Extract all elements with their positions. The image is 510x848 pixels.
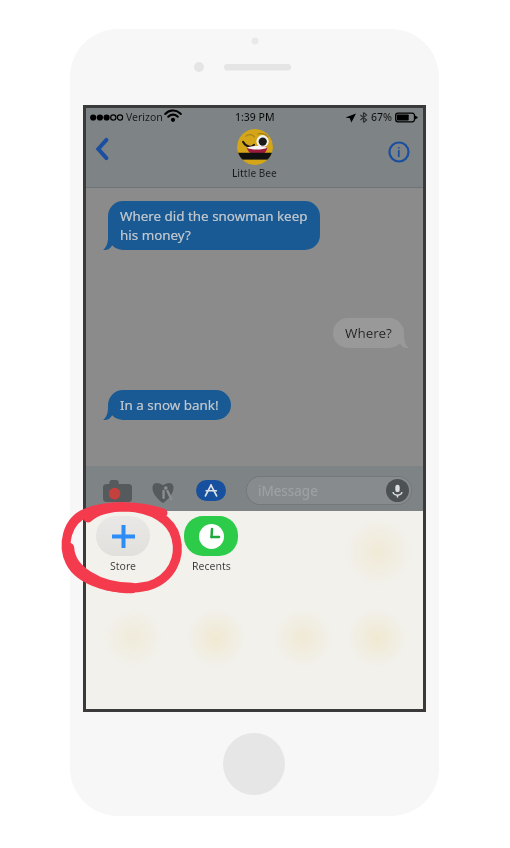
staticText: In a snow bank! bbox=[120, 396, 219, 414]
button[interactable]: Store bbox=[96, 516, 150, 573]
button[interactable]: In a snow bank! bbox=[108, 390, 231, 420]
button[interactable]: Where did the snowman keep his money? bbox=[108, 201, 320, 250]
staticText: Store bbox=[110, 559, 136, 573]
staticText: Little Bee bbox=[232, 166, 277, 180]
button[interactable]: Details bbox=[388, 141, 410, 163]
staticText: iMessage bbox=[258, 482, 318, 500]
button[interactable]: Camera bbox=[103, 480, 132, 502]
button[interactable]: Dictate bbox=[386, 479, 409, 502]
staticText: Recents bbox=[192, 559, 231, 573]
button[interactable]: Recents bbox=[184, 516, 238, 573]
button[interactable]: Where? bbox=[333, 318, 404, 348]
button[interactable]: App Store bbox=[196, 480, 226, 501]
button[interactable]: Digital Touch bbox=[149, 479, 177, 503]
button[interactable]: iMessage bbox=[246, 476, 412, 505]
staticText: 67% bbox=[371, 110, 392, 124]
button[interactable]: Little Bee bbox=[232, 129, 277, 180]
staticText: Where? bbox=[345, 324, 392, 342]
staticText: Verizon bbox=[126, 110, 163, 124]
staticText: i bbox=[397, 144, 401, 160]
button[interactable]: Back bbox=[93, 137, 117, 161]
staticText: Where did the snowman keep his money? bbox=[120, 207, 308, 244]
staticText: 1:39 PM bbox=[235, 110, 275, 124]
